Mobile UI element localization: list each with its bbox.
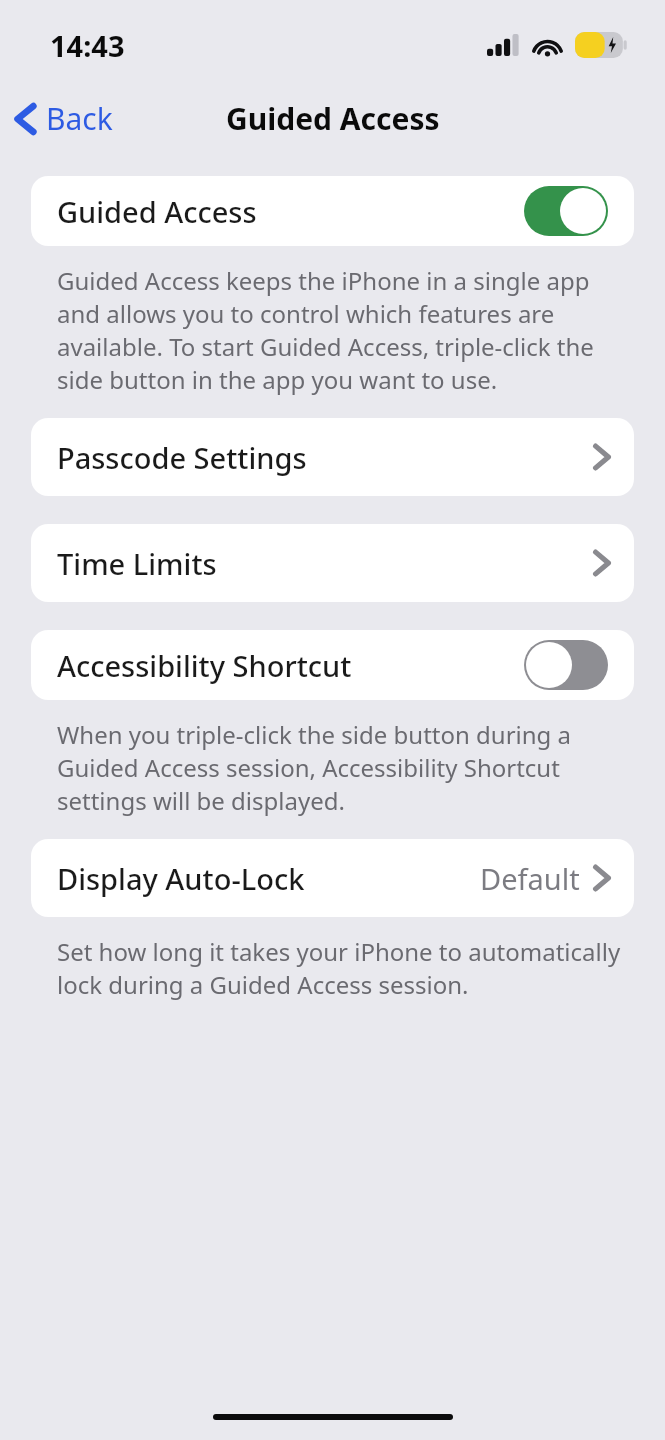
staticText: Accessibility Shortcut [57, 646, 524, 685]
other: Off [524, 640, 608, 690]
staticText: Set how long it takes your iPhone to aut… [57, 935, 625, 1001]
button[interactable]: Display Auto-Lock [31, 839, 634, 917]
button[interactable]: Passcode Settings [31, 418, 634, 496]
button[interactable]: Accessibility Shortcut [31, 630, 634, 700]
staticText: 14:43 [50, 26, 125, 65]
staticText: Passcode Settings [57, 438, 592, 477]
staticText: When you triple-click the side button du… [57, 718, 625, 817]
staticText: Display Auto-Lock [57, 859, 480, 898]
button[interactable]: Time Limits [31, 524, 634, 602]
staticText: Back [46, 98, 113, 139]
staticText: Guided Access [57, 192, 524, 231]
button[interactable]: Guided Access [31, 176, 634, 246]
staticText: Time Limits [57, 544, 592, 583]
staticText: Guided Access [226, 98, 440, 139]
staticText: Default [480, 859, 580, 898]
button[interactable]: Back [0, 92, 127, 145]
other: On [524, 186, 608, 236]
staticText: Guided Access keeps the iPhone in a sing… [57, 264, 625, 396]
